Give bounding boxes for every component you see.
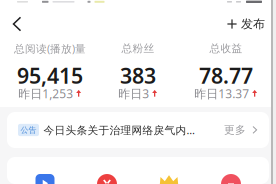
button[interactable]: 发布 xyxy=(227,9,276,39)
button[interactable]: Video xyxy=(14,174,76,184)
button[interactable]: 公告 xyxy=(7,112,269,148)
staticText: 总粉丝 xyxy=(121,42,154,55)
staticText: 昨日1,253 xyxy=(18,85,73,101)
staticText: 95,415 xyxy=(17,61,83,90)
staticText: 今日头条关于治理网络戾气内… xyxy=(43,123,194,137)
button[interactable]: Creator xyxy=(138,174,200,184)
staticText: 78.77 xyxy=(199,61,253,90)
staticText: 昨日3 xyxy=(118,85,149,101)
staticText: 公告 xyxy=(20,125,36,135)
staticText: 总收益 xyxy=(209,42,242,55)
button[interactable]: Article xyxy=(76,174,138,184)
staticText: 昨日13.37 xyxy=(194,85,249,101)
staticText: 发布 xyxy=(241,17,265,31)
staticText: 更多 xyxy=(224,123,246,136)
button[interactable]: Back xyxy=(0,9,31,39)
staticText: 总阅读(播放)量 xyxy=(14,41,86,56)
button[interactable]: Income xyxy=(200,174,262,184)
staticText: 383 xyxy=(120,61,156,90)
